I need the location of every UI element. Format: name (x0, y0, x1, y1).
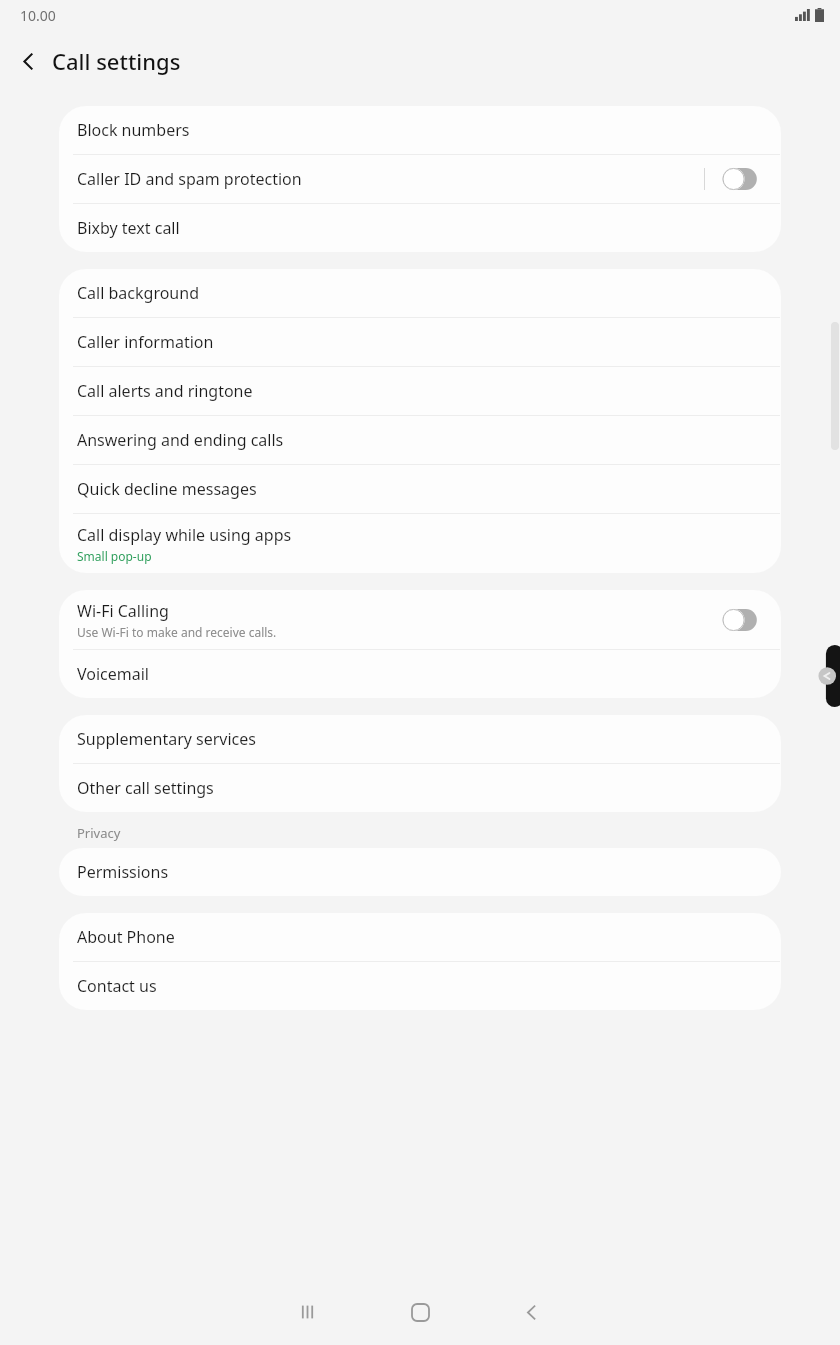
staticText: Call display while using apps (77, 524, 292, 546)
button[interactable]: Toggle (719, 166, 763, 192)
button[interactable]: Call display while using apps (59, 514, 781, 573)
staticText: Small pop-up (77, 548, 152, 564)
staticText: Quick decline messages (77, 478, 763, 500)
staticText: Contact us (77, 975, 763, 997)
button[interactable]: Answering and ending calls (59, 416, 781, 464)
button[interactable]: Bixby text call (59, 204, 781, 252)
button[interactable]: Contact us (59, 962, 781, 1010)
button[interactable]: Edge panel (818, 645, 840, 707)
button[interactable]: Recents (277, 1280, 341, 1344)
staticText: Other call settings (77, 777, 763, 799)
staticText: About Phone (77, 926, 763, 948)
staticText: Permissions (77, 861, 763, 883)
staticText: Privacy (77, 824, 121, 842)
staticText: Block numbers (77, 119, 763, 141)
button[interactable]: Call background (59, 269, 781, 317)
button[interactable]: Permissions (59, 848, 781, 896)
staticText: Wi-Fi Calling (77, 600, 169, 622)
staticText: Answering and ending calls (77, 429, 763, 451)
button[interactable]: Block numbers (59, 106, 781, 154)
staticText: Call background (77, 282, 763, 304)
staticText: 10.00 (20, 6, 56, 25)
button[interactable]: About Phone (59, 913, 781, 961)
staticText: Call alerts and ringtone (77, 380, 763, 402)
staticText: Caller information (77, 331, 763, 353)
staticText: Call settings (52, 46, 181, 76)
staticText: Voicemail (77, 663, 763, 685)
button[interactable]: Back (499, 1280, 563, 1344)
staticText: Supplementary services (77, 728, 763, 750)
staticText: Bixby text call (77, 217, 763, 239)
staticText: Caller ID and spam protection (77, 168, 704, 190)
button[interactable]: Wi-Fi Calling (59, 590, 781, 649)
button[interactable]: Voicemail (59, 650, 781, 698)
button[interactable]: Call alerts and ringtone (59, 367, 781, 415)
button[interactable]: Supplementary services (59, 715, 781, 763)
button[interactable]: Quick decline messages (59, 465, 781, 513)
button[interactable]: Other call settings (59, 764, 781, 812)
button[interactable]: Toggle (719, 607, 763, 633)
button[interactable]: Back (8, 41, 48, 81)
button[interactable]: Caller information (59, 318, 781, 366)
button[interactable]: Caller ID and spam protection (59, 155, 781, 203)
staticText: Use Wi-Fi to make and receive calls. (77, 624, 277, 640)
button[interactable]: Home (388, 1280, 452, 1344)
